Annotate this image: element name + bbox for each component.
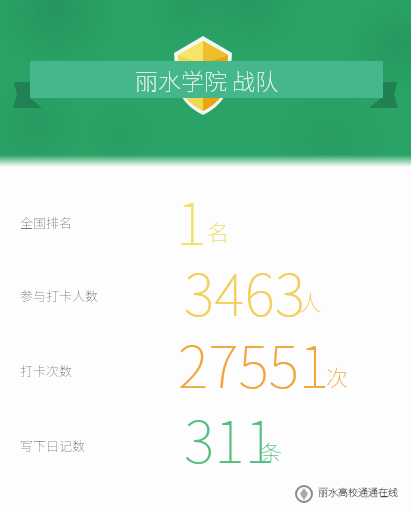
staticText: 27551: [178, 321, 330, 405]
staticText: 全国排名: [20, 213, 73, 232]
staticText: 311: [184, 396, 275, 480]
staticText: 写下日记数: [20, 436, 86, 455]
button[interactable]: 丽水学院 战队: [135, 63, 279, 96]
staticText: 打卡次数: [20, 361, 73, 380]
staticText: 次: [326, 360, 349, 392]
staticText: 名: [207, 215, 230, 247]
button[interactable]: 丽水高校通通在线: [318, 484, 398, 498]
staticText: 1: [176, 178, 207, 262]
staticText: 条: [260, 435, 283, 467]
staticText: 参与打卡人数: [20, 286, 99, 305]
staticText: 3463: [184, 249, 305, 333]
staticText: 人: [299, 285, 322, 317]
